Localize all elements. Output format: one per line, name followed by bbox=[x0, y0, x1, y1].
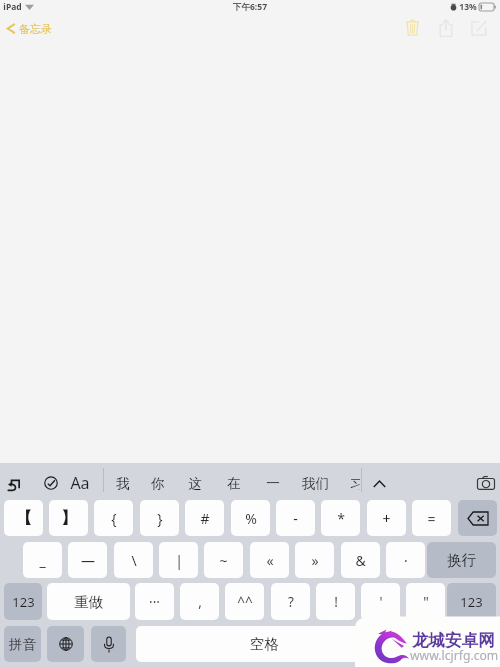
staticText: ^^ bbox=[237, 593, 253, 611]
button[interactable]: 我 bbox=[105, 469, 141, 497]
button[interactable]: = bbox=[412, 500, 451, 536]
staticText: 换行 bbox=[447, 551, 476, 569]
staticText: Aa bbox=[70, 472, 90, 494]
staticText: \ bbox=[131, 551, 137, 570]
staticText: » bbox=[311, 551, 319, 570]
staticText: ? bbox=[288, 593, 294, 611]
staticText: iPad bbox=[3, 1, 22, 13]
button[interactable]: · bbox=[386, 542, 425, 578]
staticText: 我 bbox=[116, 475, 130, 492]
button[interactable]: » bbox=[295, 542, 334, 578]
staticText: & bbox=[355, 551, 366, 570]
button[interactable]: Backspace bbox=[458, 500, 497, 536]
staticText: + bbox=[382, 509, 391, 528]
button[interactable]: 】 bbox=[49, 500, 88, 536]
staticText: 空格 bbox=[250, 635, 279, 653]
staticText: { bbox=[111, 509, 117, 528]
button[interactable]: ^^ bbox=[225, 583, 264, 620]
staticText: 你 bbox=[151, 475, 165, 492]
button[interactable]: 重做 bbox=[47, 583, 130, 620]
staticText: % bbox=[245, 509, 257, 528]
staticText: } bbox=[157, 509, 163, 528]
button[interactable]: Undo bbox=[3, 470, 27, 496]
button[interactable]: | bbox=[159, 542, 198, 578]
staticText: 一 bbox=[266, 475, 280, 492]
staticText: | bbox=[175, 551, 183, 570]
staticText: — bbox=[81, 551, 95, 570]
button[interactable]: % bbox=[231, 500, 270, 536]
staticText: · bbox=[404, 551, 408, 570]
button[interactable]: 123 bbox=[4, 583, 42, 620]
staticText: 拼音 bbox=[9, 636, 36, 653]
button[interactable]: 一 bbox=[255, 469, 291, 497]
button[interactable]: Text format bbox=[66, 471, 94, 495]
button[interactable]: ··· bbox=[135, 583, 174, 620]
staticText: 这 bbox=[188, 475, 202, 492]
button[interactable]: 备忘录 bbox=[6, 21, 52, 36]
button[interactable]: , bbox=[180, 583, 219, 620]
button[interactable]: « bbox=[250, 542, 289, 578]
staticText: _ bbox=[39, 551, 46, 570]
button[interactable]: } bbox=[140, 500, 179, 536]
button[interactable]: Share bbox=[435, 17, 456, 38]
button[interactable]: Spell check bbox=[39, 471, 63, 495]
button[interactable]: ~ bbox=[204, 542, 243, 578]
button[interactable]: " bbox=[406, 583, 445, 620]
staticText: 习 bbox=[350, 476, 360, 490]
button[interactable]: Expand suggestions bbox=[369, 474, 389, 494]
button[interactable]: 我们 bbox=[297, 469, 333, 497]
staticText: 在 bbox=[227, 475, 241, 492]
staticText: = bbox=[427, 509, 436, 528]
staticText: « bbox=[266, 551, 274, 570]
button[interactable]: Camera bbox=[474, 471, 498, 495]
staticText: www.lcjrfg.com bbox=[410, 647, 499, 664]
button[interactable]: 【 bbox=[4, 500, 43, 536]
staticText: 备忘录 bbox=[19, 22, 52, 36]
staticText: * bbox=[337, 509, 345, 528]
staticText: - bbox=[293, 509, 298, 528]
button[interactable]: 空格 bbox=[136, 626, 496, 662]
button[interactable]: ? bbox=[271, 583, 310, 620]
button[interactable]: 拼音 bbox=[4, 626, 41, 662]
staticText: 【 bbox=[16, 508, 32, 528]
button[interactable]: * bbox=[321, 500, 360, 536]
staticText: ~ bbox=[219, 551, 228, 570]
button[interactable]: 123 bbox=[447, 583, 496, 620]
staticText: 重做 bbox=[74, 593, 103, 611]
button[interactable]: ' bbox=[361, 583, 400, 620]
staticText: 123 bbox=[460, 593, 483, 611]
staticText: 13% bbox=[459, 1, 477, 13]
button[interactable]: Delete bbox=[401, 17, 423, 38]
button[interactable]: - bbox=[276, 500, 315, 536]
button[interactable]: + bbox=[367, 500, 406, 536]
button[interactable]: \ bbox=[114, 542, 153, 578]
button[interactable]: — bbox=[68, 542, 107, 578]
button[interactable]: { bbox=[94, 500, 133, 536]
staticText: 我们 bbox=[302, 475, 329, 492]
button[interactable]: _ bbox=[23, 542, 62, 578]
button[interactable]: 在 bbox=[216, 469, 252, 497]
button[interactable]: ! bbox=[316, 583, 355, 620]
button[interactable]: & bbox=[341, 542, 380, 578]
button[interactable]: 这 bbox=[177, 469, 213, 497]
staticText: # bbox=[200, 509, 210, 528]
button[interactable]: Switch keyboard bbox=[47, 626, 84, 662]
button[interactable]: # bbox=[185, 500, 224, 536]
staticText: , bbox=[198, 593, 202, 611]
button[interactable]: 你 bbox=[140, 469, 176, 497]
staticText: ! bbox=[334, 593, 338, 611]
button[interactable]: New note bbox=[468, 17, 490, 38]
button[interactable]: 换行 bbox=[427, 542, 496, 578]
staticText: " bbox=[423, 593, 429, 611]
staticText: 】 bbox=[61, 508, 77, 528]
staticText: ··· bbox=[149, 593, 160, 611]
button[interactable]: Dictation bbox=[91, 626, 126, 662]
staticText: 龙城安卓网 bbox=[412, 630, 495, 651]
staticText: 下午6:57 bbox=[233, 1, 267, 13]
staticText: 123 bbox=[12, 593, 35, 611]
staticText: ' bbox=[379, 593, 383, 611]
